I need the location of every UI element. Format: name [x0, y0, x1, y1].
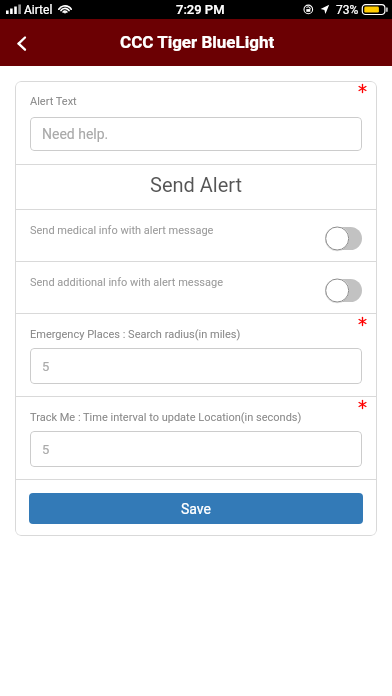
- staticText: 73%: [336, 3, 359, 17]
- staticText: 5: [42, 359, 50, 374]
- button[interactable]: Send Alert: [15, 165, 377, 209]
- staticText: Alert Text: [30, 95, 77, 108]
- staticText: 7:29 PM: [176, 2, 225, 17]
- staticText: Track Me : Time interval to update Locat…: [30, 411, 302, 424]
- staticText: Send medical info with alert message: [30, 224, 214, 237]
- button[interactable]: Back: [0, 19, 44, 66]
- button[interactable]: Toggle: [325, 226, 363, 251]
- staticText: 5: [42, 442, 50, 457]
- staticText: Send Alert: [150, 173, 243, 196]
- staticText: Emergency Places : Search radius(in mile…: [30, 328, 241, 341]
- button[interactable]: Send additional info with alert message: [15, 262, 377, 313]
- button[interactable]: 5: [30, 431, 362, 467]
- button[interactable]: Toggle: [325, 278, 363, 303]
- staticText: Save: [181, 501, 211, 517]
- staticText: CCC Tiger BlueLight: [120, 32, 275, 52]
- staticText: Need help.: [42, 126, 109, 142]
- button[interactable]: 5: [30, 348, 362, 384]
- staticText: Airtel: [24, 3, 53, 17]
- staticText: Send additional info with alert message: [30, 276, 223, 289]
- button[interactable]: Need help.: [30, 117, 362, 151]
- button[interactable]: Save: [29, 493, 363, 524]
- button[interactable]: Send medical info with alert message: [15, 210, 377, 261]
